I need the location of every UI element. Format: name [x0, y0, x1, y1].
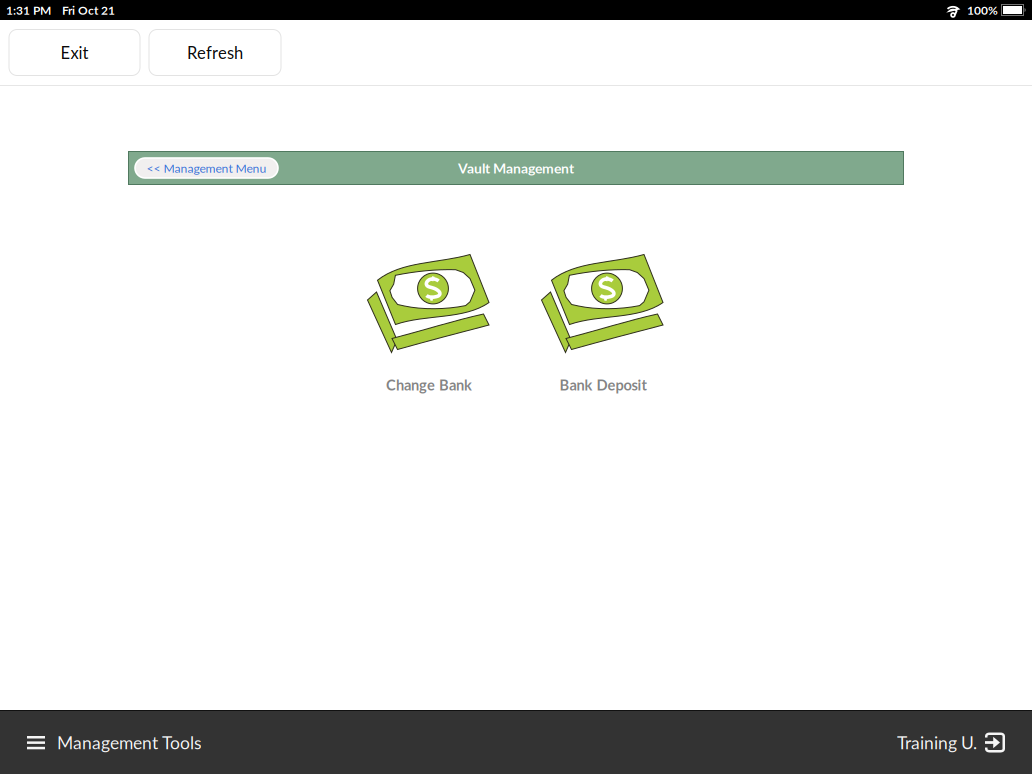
- staticText: Change Bank: [386, 376, 472, 394]
- button[interactable]: Bank Deposit: [516, 252, 690, 394]
- staticText: << Management Menu: [146, 161, 266, 175]
- staticText: Management Tools: [57, 732, 202, 753]
- staticText: Training U.: [897, 732, 977, 753]
- button[interactable]: Change Bank: [342, 252, 516, 394]
- staticText: Bank Deposit: [559, 376, 646, 394]
- button[interactable]: Exit: [9, 29, 140, 75]
- staticText: Exit: [60, 43, 88, 62]
- staticText: Vault Management: [458, 160, 574, 176]
- staticText: 100%: [967, 3, 998, 17]
- staticText: 1:31 PM: [6, 3, 51, 17]
- button[interactable]: Management Tools: [27, 710, 202, 774]
- staticText: Refresh: [187, 43, 243, 62]
- button[interactable]: << Management Menu: [135, 158, 278, 178]
- button[interactable]: Refresh: [149, 29, 281, 75]
- button[interactable]: Training U.: [897, 710, 1005, 774]
- staticText: Fri Oct 21: [62, 3, 115, 17]
